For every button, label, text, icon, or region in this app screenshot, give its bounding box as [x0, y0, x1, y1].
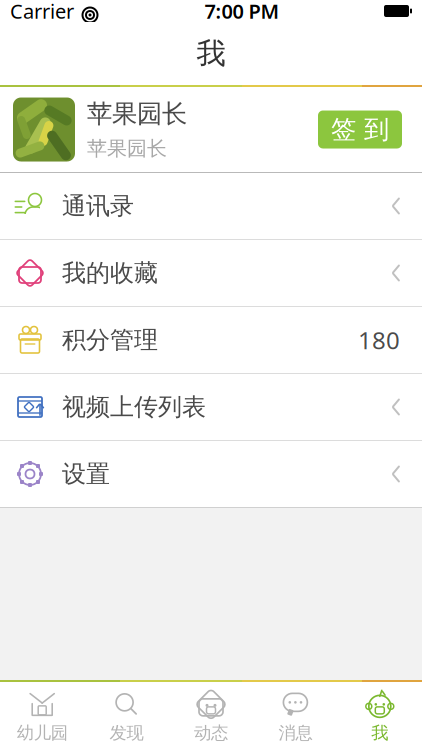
staticText: 发现	[110, 722, 144, 744]
staticText: 签 到	[331, 114, 389, 145]
button[interactable]: 积分管理	[0, 307, 422, 373]
button[interactable]: 视频上传列表	[0, 374, 422, 440]
button[interactable]: 幼儿园	[0, 683, 84, 749]
button[interactable]: 我的收藏	[0, 240, 422, 306]
staticText: 消息	[278, 722, 312, 744]
staticText: 设置	[62, 459, 110, 489]
button[interactable]: 通讯录	[0, 173, 422, 239]
staticText: 我	[371, 722, 388, 744]
staticText: 视频上传列表	[62, 392, 206, 422]
staticText: 180	[358, 324, 400, 356]
staticText: 动态	[194, 722, 228, 744]
staticText: 我	[196, 35, 225, 71]
staticText: 我的收藏	[62, 258, 158, 288]
staticText: Carrier	[10, 0, 74, 24]
staticText: 苹果园长	[87, 98, 187, 129]
button[interactable]: 我	[338, 683, 422, 749]
staticText: 7:00 PM	[204, 0, 279, 24]
button[interactable]: 签 到	[318, 110, 402, 148]
staticText: 通讯录	[62, 191, 134, 221]
button[interactable]: 动态	[169, 683, 253, 749]
staticText: 积分管理	[62, 325, 158, 355]
staticText: 苹果园长	[87, 136, 167, 161]
button[interactable]: 消息	[253, 683, 338, 749]
button[interactable]: 设置	[0, 441, 422, 507]
staticText: 幼儿园	[17, 722, 68, 744]
button[interactable]: 发现	[84, 683, 169, 749]
